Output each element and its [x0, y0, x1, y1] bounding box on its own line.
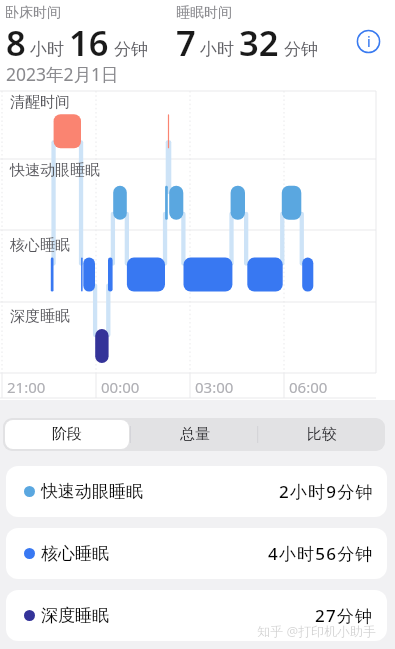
staticText: 小时 — [200, 39, 234, 60]
staticText: 知乎 @打印机小助手 — [257, 622, 377, 640]
staticText: 06:00 — [289, 377, 328, 397]
staticText: 核心睡眠 — [10, 236, 70, 255]
staticText: 00:00 — [101, 377, 140, 397]
button[interactable]: 深度睡眠 — [6, 590, 387, 641]
staticText: 27分钟 — [315, 604, 374, 627]
staticText: 32 — [239, 19, 279, 66]
staticText: 分钟 — [114, 39, 148, 60]
button[interactable]: 阶段 — [5, 420, 129, 449]
staticText: 小时 — [30, 39, 64, 60]
staticText: 深度睡眠 — [41, 605, 109, 626]
button[interactable]: 总量 — [133, 420, 256, 449]
staticText: 阶段 — [52, 425, 82, 444]
staticText: 21:00 — [7, 377, 46, 397]
staticText: 总量 — [180, 425, 210, 444]
button[interactable]: 比较 — [260, 420, 383, 449]
staticText: 8 — [6, 19, 26, 66]
button[interactable]: 核心睡眠 — [6, 528, 387, 579]
staticText: 卧床时间 — [5, 4, 61, 22]
button[interactable]: 信息 — [356, 29, 381, 54]
staticText: 清醒时间 — [10, 93, 70, 112]
staticText: 4小时56分钟 — [268, 542, 374, 565]
staticText: 16 — [69, 19, 109, 66]
staticText: 分钟 — [284, 39, 318, 60]
button[interactable]: 快速动眼睡眠 — [6, 466, 387, 517]
staticText: 2小时9分钟 — [279, 480, 374, 503]
staticText: 比较 — [307, 425, 337, 444]
staticText: 核心睡眠 — [41, 543, 109, 564]
staticText: 睡眠时间 — [176, 4, 232, 22]
staticText: 快速动眼睡眠 — [10, 161, 100, 180]
staticText: 快速动眼睡眠 — [41, 481, 143, 502]
staticText: 深度睡眠 — [10, 307, 70, 326]
staticText: i — [367, 32, 371, 51]
staticText: 7 — [176, 19, 196, 66]
staticText: 03:00 — [195, 377, 234, 397]
staticText: 2023年2月1日 — [6, 62, 119, 86]
